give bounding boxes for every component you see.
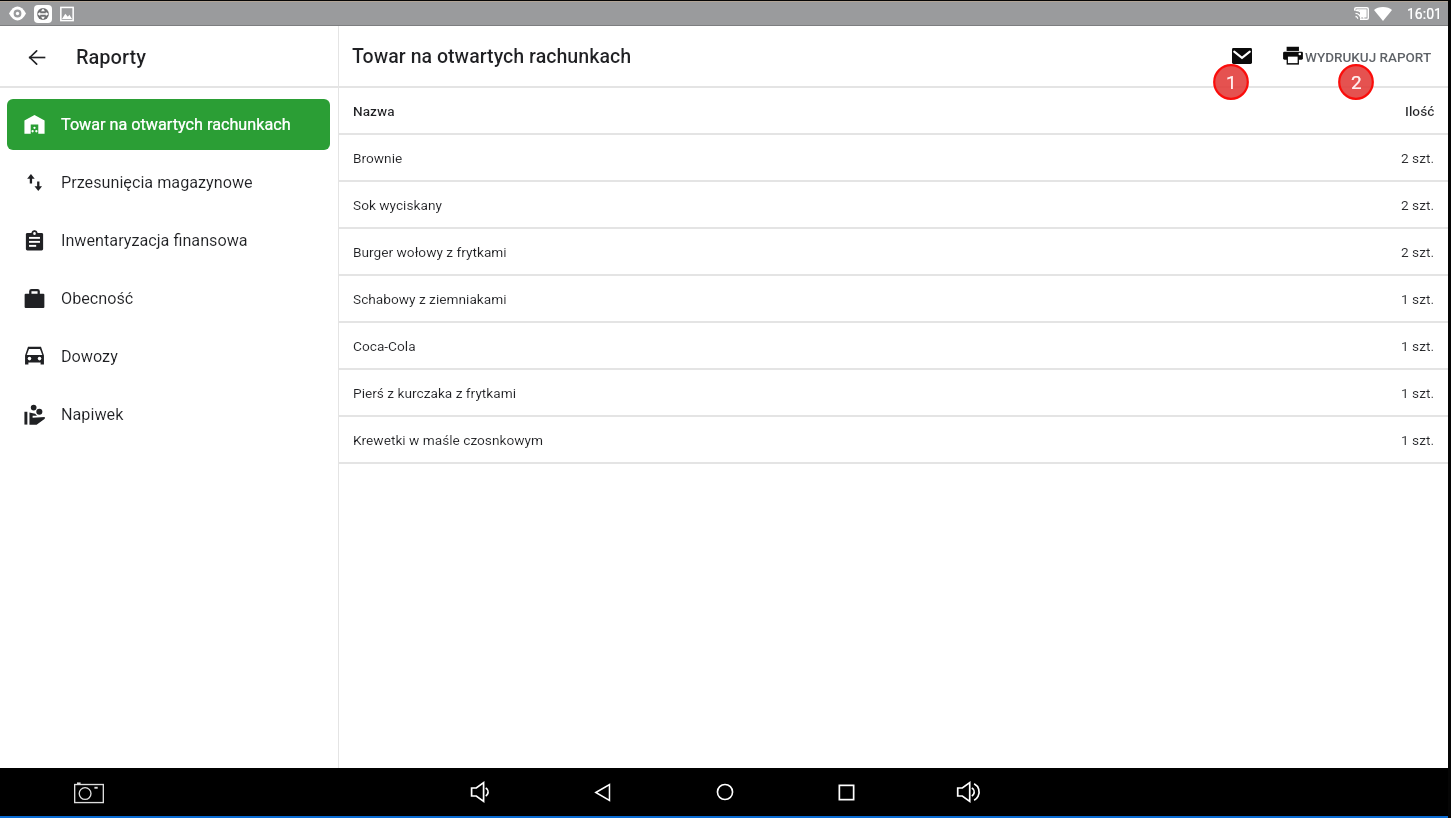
staticText: Ilość bbox=[1405, 103, 1435, 119]
button[interactable]: Dowozy bbox=[0, 327, 338, 385]
staticText: Krewetki w maśle czosnkowym bbox=[353, 432, 544, 448]
staticText: 1 szt. bbox=[1401, 291, 1435, 307]
staticText: 16:01 bbox=[1407, 6, 1442, 22]
staticText: Coca-Cola bbox=[353, 338, 416, 354]
staticText: Brownie bbox=[353, 150, 403, 166]
button[interactable]: Pierś z kurczaka z frytkami bbox=[339, 369, 1451, 416]
button[interactable]: Screenshot bbox=[59, 768, 119, 816]
staticText: Burger wołowy z frytkami bbox=[353, 244, 507, 260]
button[interactable]: Inwentaryzacja finansowa bbox=[0, 211, 338, 269]
staticText: Nazwa bbox=[353, 103, 395, 119]
staticText: Pierś z kurczaka z frytkami bbox=[353, 385, 517, 401]
button[interactable]: Home bbox=[694, 768, 755, 816]
staticText: Napiwek bbox=[61, 405, 124, 424]
button[interactable]: Back bbox=[21, 41, 53, 73]
button[interactable]: Schabowy z ziemniakami bbox=[339, 275, 1451, 322]
staticText: 2 szt. bbox=[1401, 197, 1435, 213]
button[interactable]: Volume down bbox=[450, 768, 511, 816]
button[interactable]: Towar na otwartych rachunkach bbox=[0, 95, 338, 153]
staticText: Obecność bbox=[61, 289, 134, 308]
button[interactable]: Krewetki w maśle czosnkowym bbox=[339, 416, 1451, 463]
staticText: Sok wyciskany bbox=[353, 197, 442, 213]
staticText: 2 szt. bbox=[1401, 150, 1435, 166]
staticText: 1 bbox=[1226, 71, 1237, 93]
button[interactable]: Recents bbox=[816, 768, 877, 816]
button[interactable]: Volume up bbox=[938, 768, 999, 816]
staticText: Schabowy z ziemniakami bbox=[353, 291, 507, 307]
button[interactable]: Back bbox=[572, 768, 633, 816]
staticText: 1 szt. bbox=[1401, 432, 1435, 448]
button[interactable]: Sok wyciskany bbox=[339, 181, 1451, 228]
button[interactable]: Brownie bbox=[339, 134, 1451, 181]
staticText: Towar na otwartych rachunkach bbox=[61, 115, 291, 134]
staticText: WYDRUKUJ RAPORT bbox=[1305, 49, 1432, 65]
button[interactable]: Obecność bbox=[0, 269, 338, 327]
staticText: Inwentaryzacja finansowa bbox=[61, 231, 248, 250]
staticText: Przesunięcia magazynowe bbox=[61, 173, 253, 192]
button[interactable]: Przesunięcia magazynowe bbox=[0, 153, 338, 211]
staticText: 2 bbox=[1351, 71, 1362, 93]
staticText: Towar na otwartych rachunkach bbox=[352, 45, 632, 68]
button[interactable]: Burger wołowy z frytkami bbox=[339, 228, 1451, 275]
staticText: 1 szt. bbox=[1401, 338, 1435, 354]
staticText: 1 szt. bbox=[1401, 385, 1435, 401]
button[interactable]: Coca-Cola bbox=[339, 322, 1451, 369]
button[interactable]: Send by email bbox=[1222, 37, 1262, 77]
staticText: Raporty bbox=[76, 45, 146, 68]
button[interactable]: Napiwek bbox=[0, 385, 338, 443]
button[interactable]: WYDRUKUJ RAPORT bbox=[1282, 39, 1432, 74]
staticText: Dowozy bbox=[61, 347, 118, 366]
staticText: 2 szt. bbox=[1401, 244, 1435, 260]
